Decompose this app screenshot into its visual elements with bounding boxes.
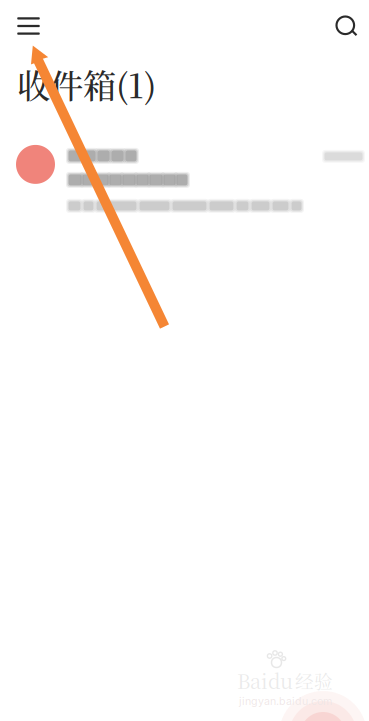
button[interactable]	[0, 108, 369, 224]
staticText: 经验	[295, 667, 333, 694]
staticText: 收件箱(1)	[17, 60, 156, 108]
staticText: jingyan.baidu.com	[239, 695, 332, 708]
button[interactable]: Search	[324, 0, 368, 52]
staticText: Baidu	[237, 666, 293, 695]
button[interactable]: Menu	[6, 0, 50, 52]
